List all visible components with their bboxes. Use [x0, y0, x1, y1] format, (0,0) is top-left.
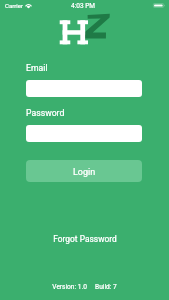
button[interactable]: Login: [26, 160, 142, 182]
staticText: Email: [26, 63, 48, 73]
staticText: Version: 1.0 Build: 7: [52, 283, 117, 291]
staticText: Password: [26, 108, 65, 118]
button[interactable]: [26, 125, 142, 142]
other: Wi-Fi signal: [25, 3, 32, 8]
button[interactable]: [26, 80, 142, 97]
other: Battery: [153, 3, 165, 8]
staticText: Login: [73, 167, 96, 178]
staticText: Carrier: [5, 2, 23, 9]
button[interactable]: Forgot Password: [0, 232, 169, 246]
staticText: 4:03 PM: [71, 2, 95, 10]
staticText: Forgot Password: [53, 234, 117, 244]
